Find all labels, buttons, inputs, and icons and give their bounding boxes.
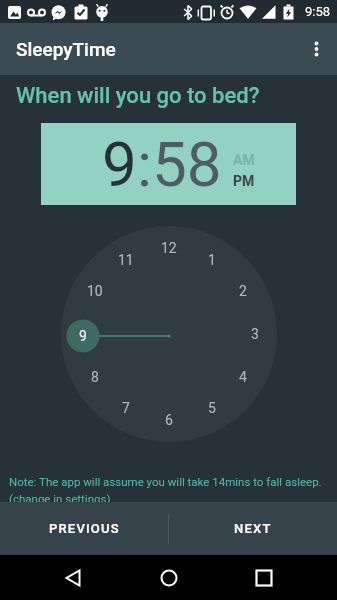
button[interactable]: 9	[68, 321, 98, 351]
button[interactable]: 1	[197, 245, 227, 275]
button[interactable]: 12	[154, 233, 184, 263]
staticText: SleepyTime	[16, 38, 116, 60]
button[interactable]	[229, 555, 299, 600]
button[interactable]: 8	[80, 362, 110, 392]
staticText: :58	[137, 128, 222, 201]
staticText: 6	[165, 412, 173, 428]
staticText: 9	[102, 128, 137, 201]
button[interactable]: 5	[197, 393, 227, 423]
staticText: 10	[87, 283, 103, 299]
button[interactable]: 4	[228, 362, 258, 392]
staticText: When will you go to bed?	[16, 83, 260, 109]
staticText: 9	[79, 328, 87, 344]
button[interactable]	[134, 555, 204, 600]
staticText: 9:58	[305, 4, 331, 19]
staticText: PREVIOUS	[49, 521, 120, 536]
button[interactable]: AM	[233, 152, 255, 168]
staticText: 12	[161, 240, 177, 256]
staticText: 3	[251, 326, 259, 342]
staticText: Note: The app will assume you will take …	[9, 475, 337, 506]
button[interactable]: 9	[41, 123, 296, 205]
staticText: NEXT	[234, 521, 272, 536]
staticText: 8	[91, 369, 99, 385]
button[interactable]: 11	[111, 245, 141, 275]
button[interactable]: NEXT	[169, 502, 337, 555]
button[interactable]: 3	[240, 319, 270, 349]
button[interactable]: 7	[111, 393, 141, 423]
button[interactable]	[293, 29, 333, 69]
button[interactable]: 2	[228, 276, 258, 306]
staticText: 4	[239, 369, 247, 385]
staticText: 2	[239, 283, 247, 299]
button[interactable]: PREVIOUS	[0, 502, 168, 555]
staticText: 5	[208, 400, 216, 416]
staticText: 7	[122, 400, 130, 416]
button[interactable]	[39, 555, 109, 600]
button[interactable]: PM	[233, 173, 255, 189]
button[interactable]: 6	[154, 405, 184, 435]
staticText: 11	[118, 252, 134, 268]
button[interactable]: 10	[80, 276, 110, 306]
staticText: 1	[208, 252, 216, 268]
